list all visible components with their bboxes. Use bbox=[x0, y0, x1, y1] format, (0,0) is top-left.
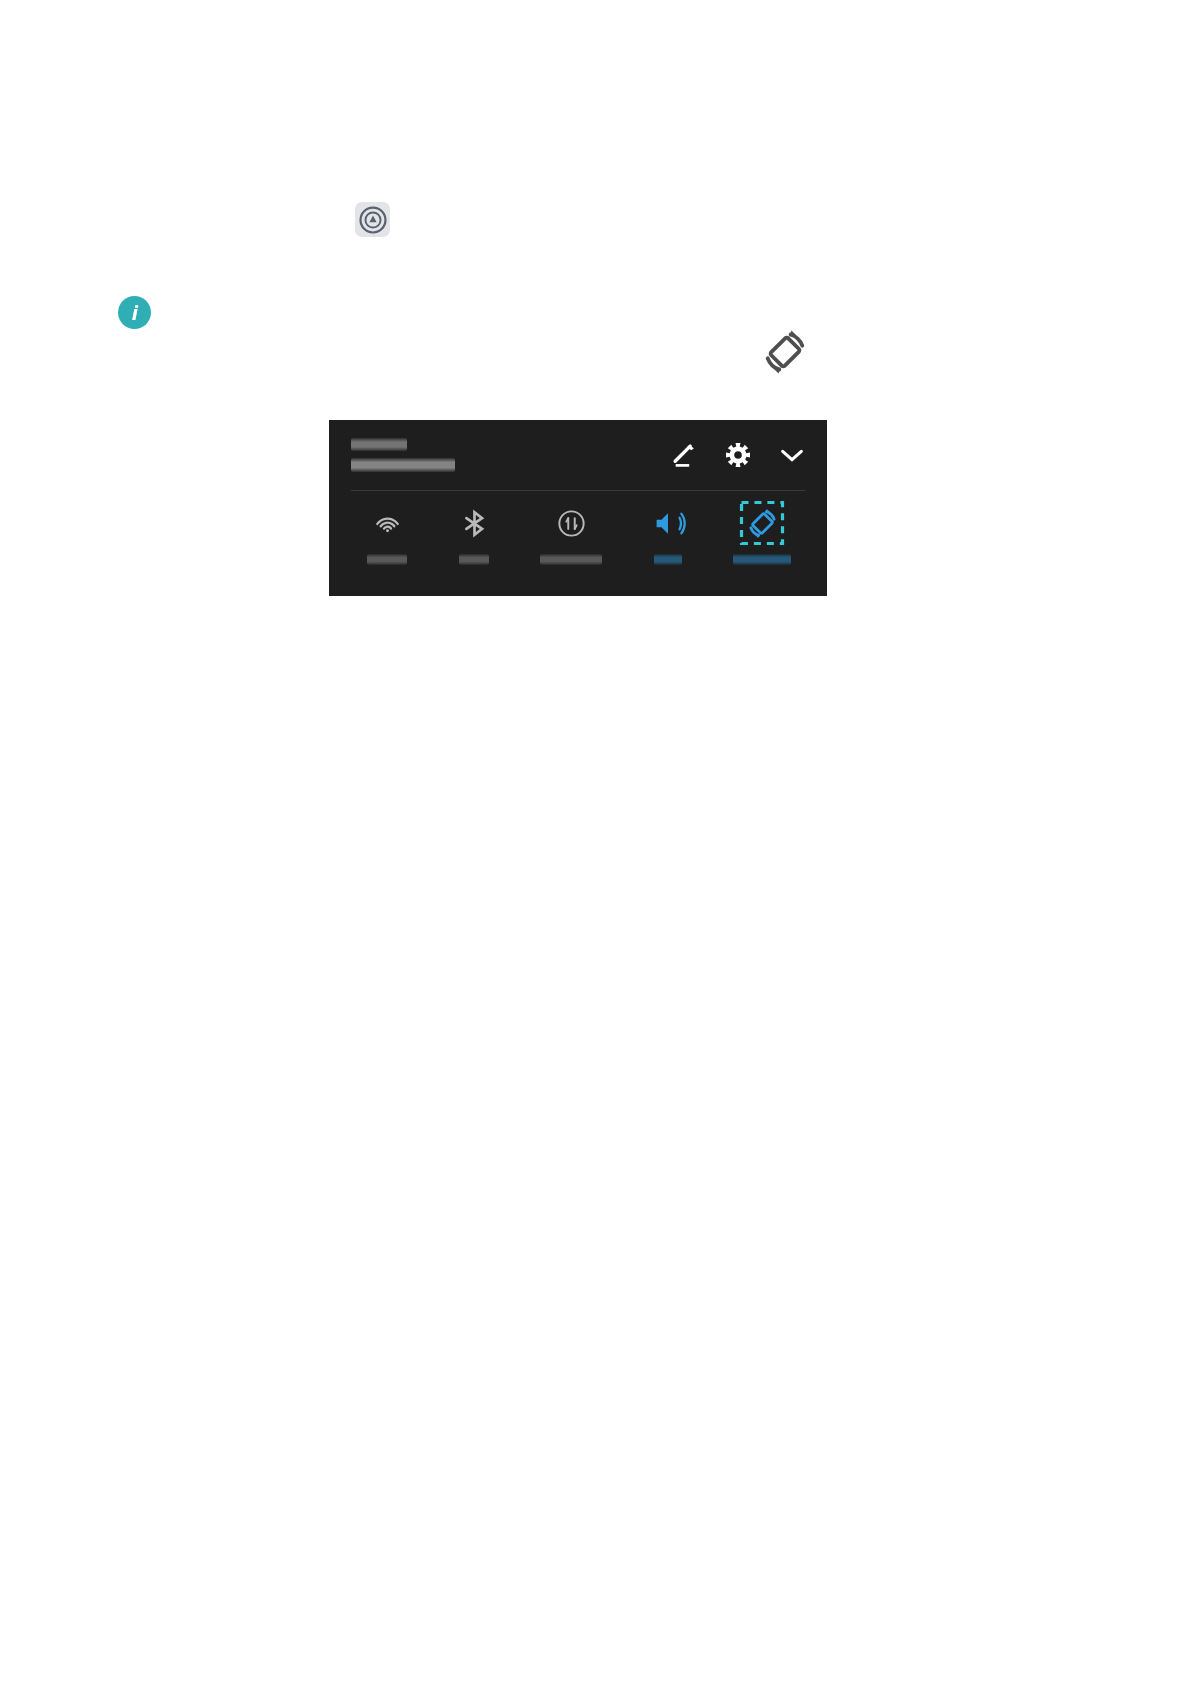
button[interactable]: Auto-rotate bbox=[725, 501, 799, 565]
button[interactable]: Settings bbox=[355, 202, 390, 237]
button[interactable]: Expand bbox=[775, 438, 809, 472]
button[interactable]: Bluetooth bbox=[444, 501, 504, 565]
button[interactable]: Auto-rotate screen bbox=[763, 330, 807, 374]
button[interactable]: Settings bbox=[721, 438, 755, 472]
button[interactable]: Sound bbox=[638, 501, 698, 565]
button[interactable]: Mobile data bbox=[532, 501, 610, 565]
button[interactable]: Information bbox=[118, 296, 151, 329]
staticText: i bbox=[132, 300, 138, 326]
button[interactable]: Wi-Fi bbox=[357, 501, 417, 565]
button[interactable]: Edit bbox=[667, 438, 701, 472]
